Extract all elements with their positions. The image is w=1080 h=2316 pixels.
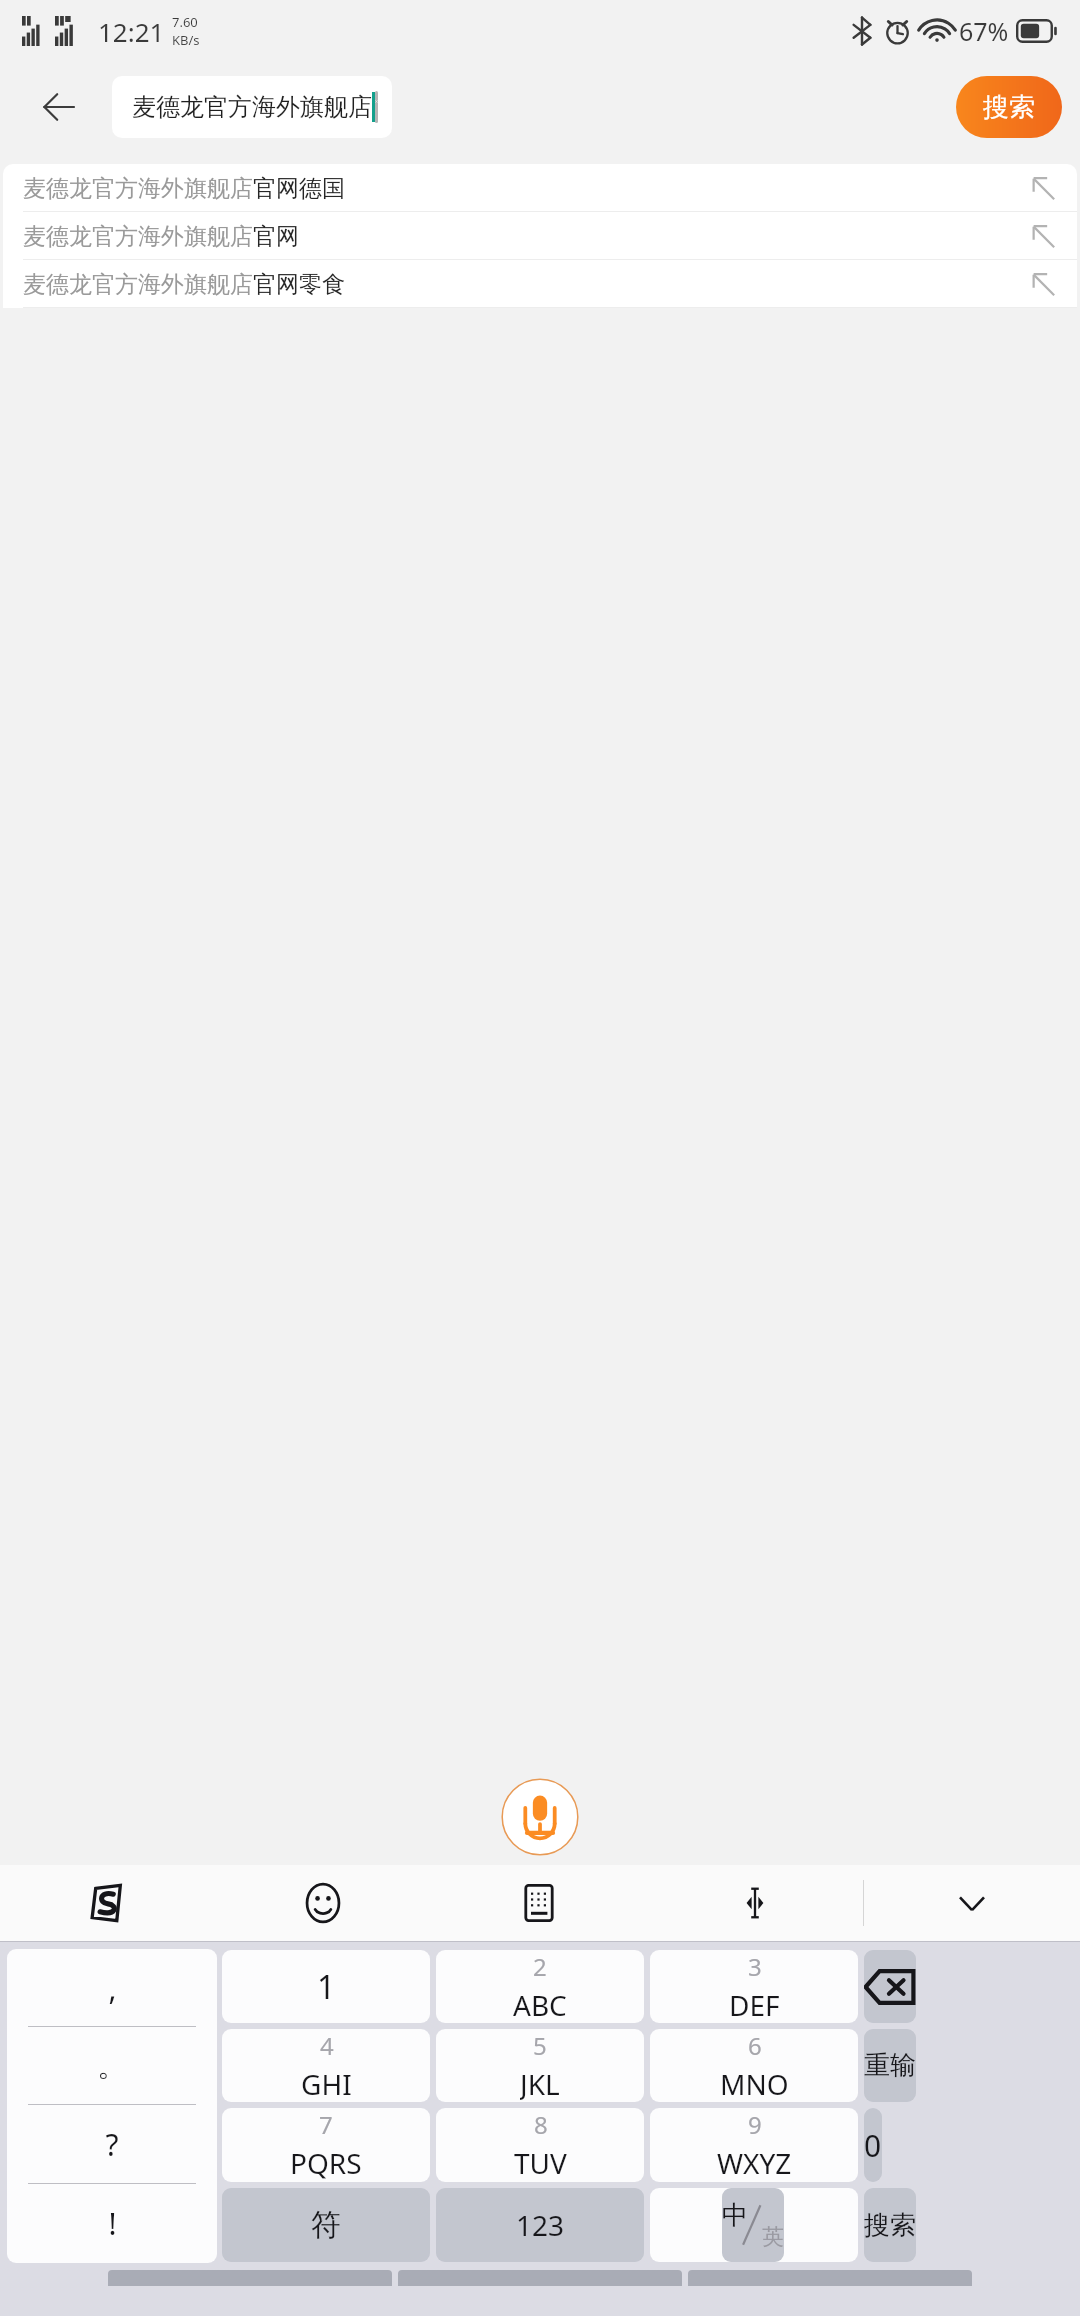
button[interactable]: 重输 [864,2029,916,2102]
button[interactable]: 。 [7,2027,217,2105]
other: Fill suggestion [1023,264,1063,304]
staticText: PQRS [290,2144,362,2182]
staticText: 英 [762,2223,784,2251]
staticText: 123 [516,2206,565,2244]
staticText: 6 [748,2029,762,2062]
staticText: 8 [534,2108,548,2141]
button[interactable]: Emoji [215,1865,431,1941]
button[interactable]: , [7,1949,217,2027]
button[interactable]: 0 [864,2108,882,2182]
button[interactable]: 麦德龙官方海外旗舰店官网零食 [3,260,1077,308]
button[interactable]: 8 [436,2108,644,2182]
staticText: TUV [514,2144,567,2182]
staticText: DEF [729,1986,780,2023]
button[interactable]: Voice input [498,1775,582,1859]
staticText: 。 [97,2047,127,2085]
button[interactable]: 麦德龙官方海外旗舰店官网德国 [3,164,1077,212]
staticText: KB/s [172,31,200,49]
button[interactable]: 6 [650,2029,858,2102]
staticText: GHI [301,2065,352,2102]
staticText: 9 [748,2108,762,2141]
button[interactable]: 123 [436,2188,644,2262]
button[interactable]: Space, voice input [650,2188,858,2262]
staticText: 0 [864,2125,882,2166]
button[interactable]: 麦德龙官方海外旗舰店官网 [3,212,1077,260]
button[interactable]: ! [7,2184,217,2263]
staticText: 符 [311,2206,341,2244]
button[interactable]: 麦德龙官方海外旗舰店 [112,76,392,138]
staticText: WXYZ [717,2144,792,2182]
staticText: 3 [748,1950,762,1983]
other: Fill suggestion [1023,216,1063,256]
staticText: 麦德龙官方海外旗舰店官网 [23,222,299,251]
staticText: 7.60 [172,13,198,31]
staticText: , [108,1968,117,2009]
staticText: 麦德龙官方海外旗舰店官网德国 [23,174,345,203]
button[interactable]: 符 [222,2188,430,2262]
button[interactable]: 9 [650,2108,858,2182]
staticText: ABC [513,1986,567,2023]
button[interactable]: Sogou input [0,1865,215,1941]
button[interactable]: Move cursor [647,1865,863,1941]
button[interactable]: Keyboard layout [431,1865,647,1941]
staticText: ? [105,2124,119,2165]
staticText: 重输 [864,2049,916,2082]
button[interactable]: 1 [222,1950,430,2023]
button[interactable]: 搜索 [956,76,1062,138]
staticText: 搜索 [864,2209,916,2242]
button[interactable]: Backspace [864,1950,916,2023]
staticText: 搜索 [983,91,1035,124]
staticText: 4 [320,2029,334,2062]
staticText: 5 [533,2029,547,2062]
other: Fill suggestion [1023,168,1063,208]
button[interactable]: 3 [650,1950,858,2023]
staticText: 12:21 [98,14,165,49]
staticText: ! [108,2203,117,2244]
staticText: JKL [520,2065,560,2102]
button[interactable]: 4 [222,2029,430,2102]
button[interactable]: Clear [375,91,378,123]
button[interactable]: Hide keyboard [864,1865,1080,1941]
staticText: 67% [959,14,1009,48]
button[interactable]: 7 [222,2108,430,2182]
staticText: 麦德龙官方海外旗舰店 [132,92,372,122]
staticText: 麦德龙官方海外旗舰店官网零食 [23,270,345,299]
button[interactable]: 5 [436,2029,644,2102]
staticText: 中 [722,2199,748,2232]
button[interactable]: Chinese English toggle [722,2188,784,2262]
button[interactable]: Back [28,77,88,137]
button[interactable]: 2 [436,1950,644,2023]
button[interactable]: ? [7,2105,217,2184]
staticText: MNO [720,2065,789,2102]
staticText: 2 [533,1950,547,1983]
staticText: 7 [319,2108,333,2141]
button[interactable]: 搜索 [864,2188,916,2262]
staticText: 1 [317,1965,336,2009]
